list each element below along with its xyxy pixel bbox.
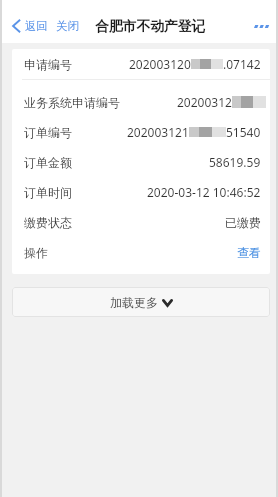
staticText: 申请编号 [24,57,72,72]
button[interactable]: 业务系统申请编号 [12,87,270,117]
staticText: 202003121 [127,124,189,140]
button[interactable]: 订单金额 [12,147,270,177]
staticText: 缴费状态 [24,215,72,230]
button[interactable]: 缴费状态 [12,207,270,237]
staticText: 202003120 [129,56,191,72]
button[interactable]: 返回 [10,9,49,43]
button[interactable]: 加载更多 [12,287,270,317]
button[interactable]: 操作 [12,237,270,267]
staticText: 已缴费 [225,215,261,230]
button[interactable]: 查看 [237,245,261,260]
staticText: .07142 [223,56,261,72]
staticText: 订单时间 [24,185,72,200]
staticText: 58619.59 [209,154,261,170]
staticText: 关闭 [56,19,79,33]
staticText: 51540 [226,124,261,140]
staticText: 返回 [25,19,48,33]
staticText: 合肥市不动产登记 [95,18,206,35]
staticText: 操作 [24,245,48,260]
staticText: 2020-03-12 10:46:52 [147,184,261,200]
staticText: 查看 [237,245,261,260]
staticText: 订单金额 [24,155,72,170]
button[interactable]: 订单编号 [12,117,270,147]
button[interactable]: 订单时间 [12,177,270,207]
staticText: 20200312 [177,94,232,110]
staticText: 加载更多 [110,295,158,310]
staticText: 业务系统申请编号 [24,95,120,110]
button[interactable]: More options [248,9,274,43]
staticText: 订单编号 [24,125,72,140]
button[interactable]: 申请编号 [12,49,270,79]
button[interactable]: 关闭 [55,9,80,43]
